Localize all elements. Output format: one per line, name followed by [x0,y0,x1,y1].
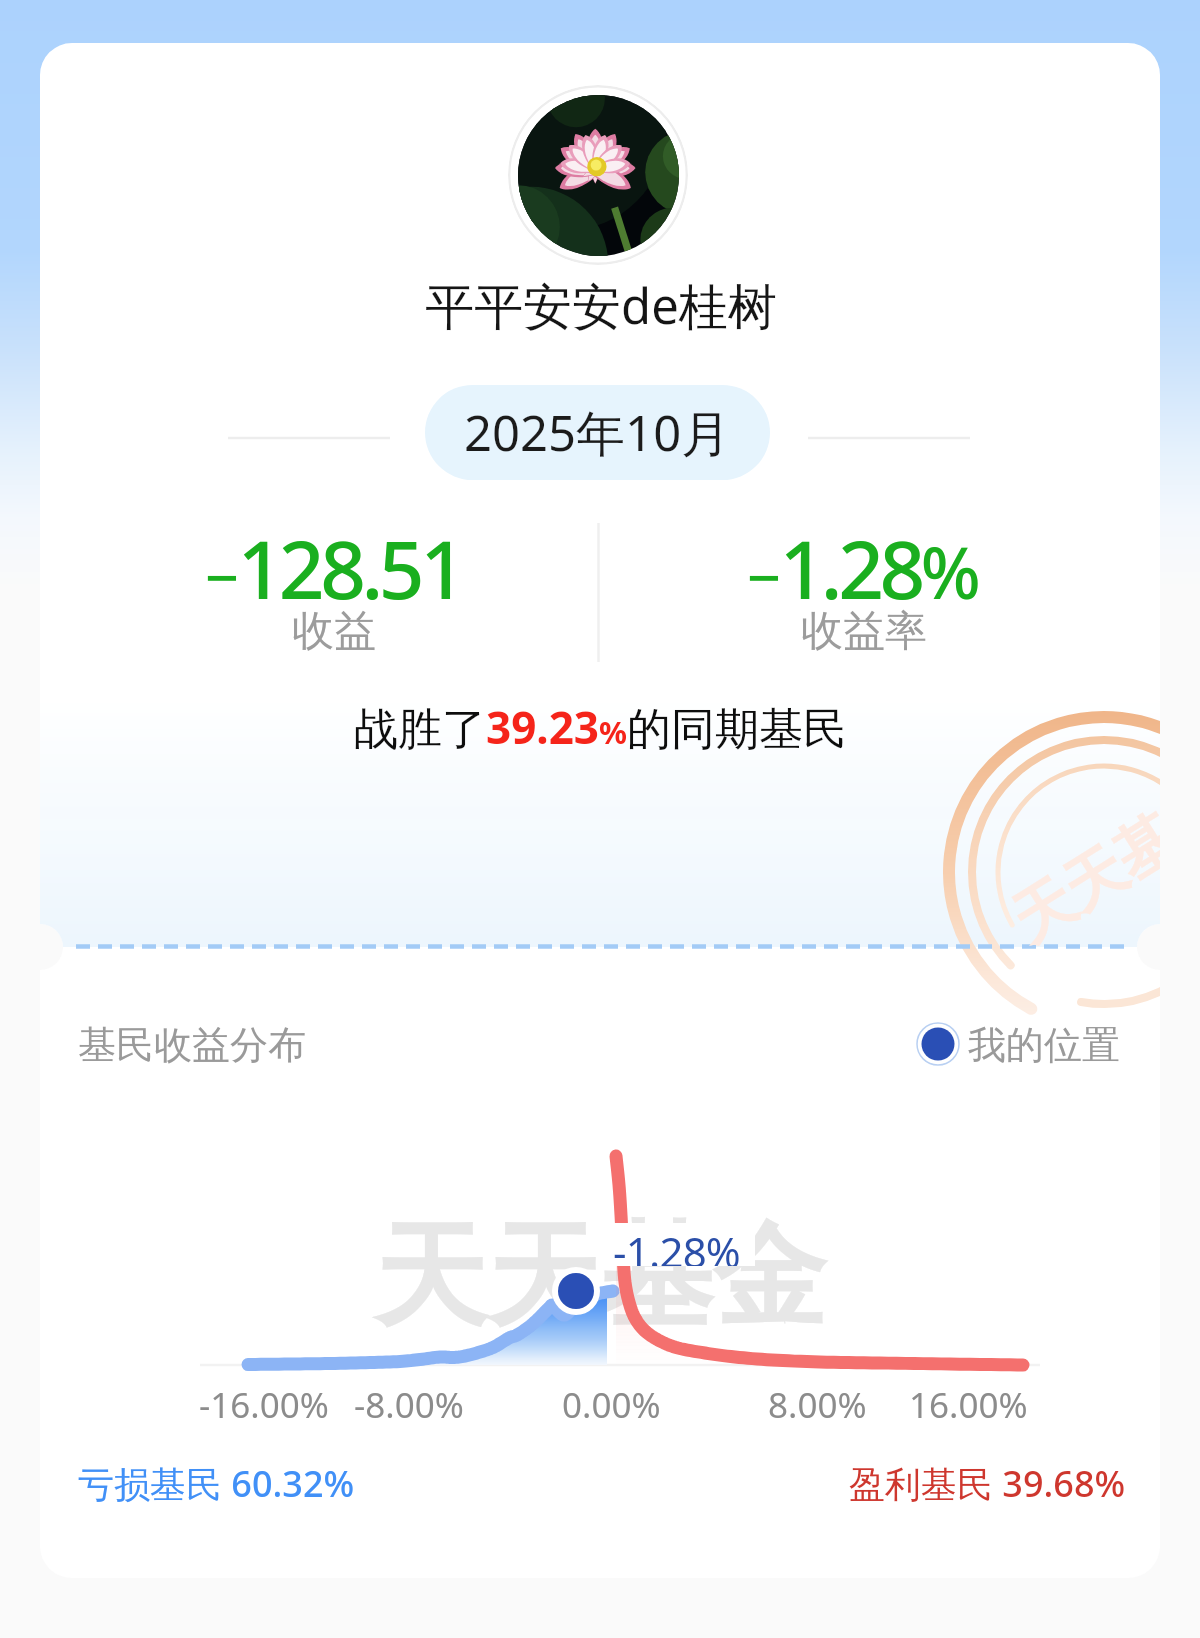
staticText: 8.00% [768,1381,867,1429]
staticText: 16.00% [909,1381,1028,1429]
staticText: 0.00% [562,1381,661,1429]
button[interactable]: 基民收益分布 [78,1021,306,1069]
button[interactable]: User avatar [508,85,688,265]
staticText: 亏损基民 60.32% [78,1459,355,1508]
button[interactable]: 盈利基民 39.68% [849,1459,1126,1508]
staticText: 天天基金 [374,1206,826,1348]
staticText: -16.00% [199,1381,329,1429]
staticText: -8.00% [354,1381,464,1429]
staticText: 盈利基民 39.68% [849,1459,1126,1508]
staticText: 战胜了39.23%的同期基民 [354,697,847,757]
staticText: 收益率 [801,605,927,658]
button[interactable]: 2025年10月 [425,385,770,480]
staticText: 天天基金 [998,767,1160,959]
staticText: −128.51 [205,513,462,622]
staticText: 我的位置 [968,1021,1120,1069]
staticText: -1.28% [613,1223,740,1266]
staticText: 2025年10月 [464,399,731,466]
staticText: 收益 [292,605,376,658]
staticText: 平平安安de桂树 [425,272,777,339]
button[interactable]: 亏损基民 60.32% [78,1459,355,1508]
staticText: 基民收益分布 [78,1021,306,1069]
staticText: −1.28% [747,513,977,622]
